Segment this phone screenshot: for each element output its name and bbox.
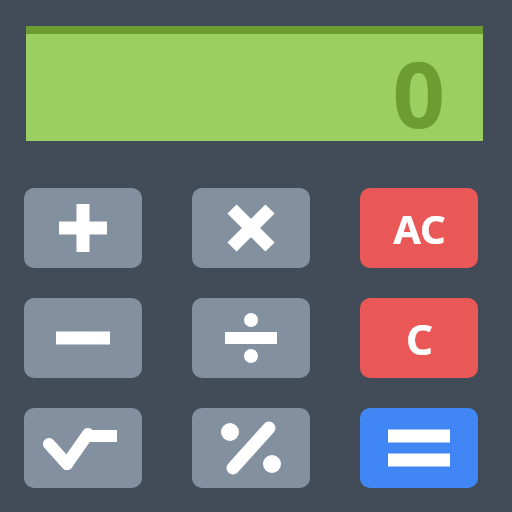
button[interactable]: Plus bbox=[24, 188, 142, 268]
button[interactable]: 0 bbox=[26, 26, 483, 141]
staticText: AC bbox=[393, 201, 446, 255]
staticText: 0 bbox=[392, 30, 445, 145]
button[interactable]: Percent bbox=[192, 408, 310, 488]
button[interactable]: Minus bbox=[24, 298, 142, 378]
staticText: C bbox=[406, 310, 433, 367]
button[interactable]: Square root bbox=[24, 408, 142, 488]
button[interactable]: C bbox=[360, 298, 478, 378]
button[interactable]: AC bbox=[360, 188, 478, 268]
button[interactable]: Equals bbox=[360, 408, 478, 488]
button[interactable]: Divide bbox=[192, 298, 310, 378]
button[interactable]: Multiply bbox=[192, 188, 310, 268]
